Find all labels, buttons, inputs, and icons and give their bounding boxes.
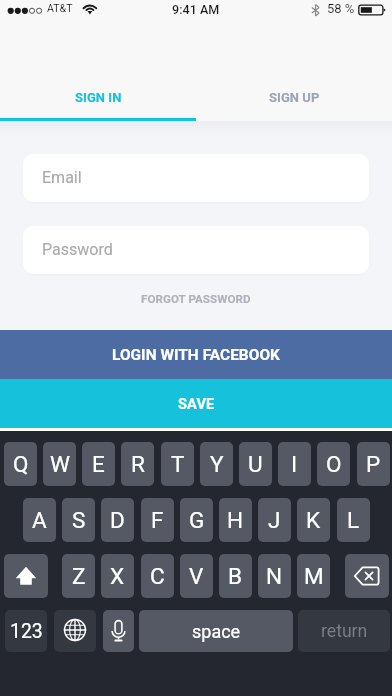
- button[interactable]: 123: [5, 610, 47, 652]
- button[interactable]: return: [298, 610, 390, 652]
- staticText: Z: [72, 563, 86, 589]
- staticText: space: [192, 621, 241, 642]
- staticText: I: [291, 451, 298, 477]
- button[interactable]: U: [239, 442, 272, 486]
- staticText: R: [131, 451, 145, 477]
- button[interactable]: Y: [200, 442, 233, 486]
- button[interactable]: R: [121, 442, 154, 486]
- staticText: K: [306, 507, 321, 533]
- button[interactable]: S: [62, 498, 95, 542]
- button[interactable]: A: [23, 498, 56, 542]
- staticText: G: [189, 507, 205, 533]
- staticText: return: [321, 621, 368, 642]
- button[interactable]: E: [82, 442, 115, 486]
- staticText: F: [151, 507, 164, 533]
- button[interactable]: LOGIN WITH FACEBOOK: [0, 330, 392, 379]
- staticText: L: [347, 507, 360, 533]
- staticText: Y: [210, 451, 224, 477]
- staticText: AT&T: [47, 2, 73, 14]
- button[interactable]: SIGN UP: [196, 76, 392, 121]
- button[interactable]: SIGN IN: [0, 76, 196, 121]
- button[interactable]: H: [219, 498, 252, 542]
- button[interactable]: I: [278, 442, 311, 486]
- staticText: FORGOT PASSWORD: [141, 292, 251, 306]
- staticText: T: [171, 451, 185, 477]
- staticText: M: [304, 563, 324, 589]
- staticText: Email: [42, 168, 82, 187]
- staticText: E: [92, 451, 105, 477]
- staticText: O: [326, 451, 342, 477]
- staticText: SIGN IN: [75, 90, 122, 105]
- button[interactable]: T: [161, 442, 194, 486]
- button[interactable]: D: [101, 498, 134, 542]
- button[interactable]: FORGOT PASSWORD: [0, 285, 392, 313]
- staticText: H: [227, 507, 244, 533]
- staticText: 58 %: [327, 1, 355, 16]
- staticText: Q: [13, 451, 29, 477]
- staticText: 123: [10, 620, 43, 643]
- button[interactable]: G: [180, 498, 213, 542]
- button[interactable]: X: [101, 554, 134, 598]
- button[interactable]: V: [180, 554, 213, 598]
- button[interactable]: SAVE: [0, 379, 392, 428]
- button[interactable]: Backspace: [345, 554, 389, 598]
- staticText: X: [110, 563, 125, 589]
- button[interactable]: O: [317, 442, 350, 486]
- staticText: SAVE: [178, 395, 215, 412]
- button[interactable]: Z: [62, 554, 95, 598]
- button[interactable]: L: [337, 498, 370, 542]
- staticText: SIGN UP: [269, 90, 320, 105]
- button[interactable]: Password: [23, 226, 369, 274]
- button[interactable]: space: [139, 610, 293, 652]
- button[interactable]: B: [219, 554, 252, 598]
- button[interactable]: W: [43, 442, 76, 486]
- button[interactable]: Change keyboard: [54, 610, 96, 652]
- staticText: LOGIN WITH FACEBOOK: [112, 346, 280, 364]
- staticText: D: [110, 507, 125, 533]
- staticText: U: [248, 451, 263, 477]
- button[interactable]: M: [297, 554, 330, 598]
- staticText: S: [72, 507, 86, 533]
- button[interactable]: C: [141, 554, 174, 598]
- button[interactable]: N: [258, 554, 291, 598]
- button[interactable]: Shift: [4, 554, 48, 598]
- button[interactable]: Q: [4, 442, 37, 486]
- staticText: W: [50, 451, 70, 477]
- staticText: V: [189, 563, 204, 589]
- staticText: 9:41 AM: [172, 2, 220, 17]
- button[interactable]: J: [258, 498, 291, 542]
- button[interactable]: Dictate: [103, 610, 134, 652]
- staticText: P: [366, 451, 381, 477]
- staticText: J: [268, 507, 281, 533]
- button[interactable]: P: [357, 442, 390, 486]
- staticText: C: [150, 563, 165, 589]
- staticText: A: [32, 507, 47, 533]
- button[interactable]: F: [141, 498, 174, 542]
- staticText: Password: [42, 240, 113, 259]
- staticText: B: [228, 563, 243, 589]
- button[interactable]: K: [297, 498, 330, 542]
- button[interactable]: Email: [23, 154, 369, 202]
- staticText: N: [266, 563, 283, 589]
